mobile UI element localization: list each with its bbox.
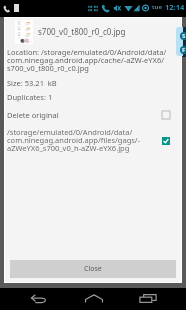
button[interactable]: Recents <box>132 288 164 310</box>
button[interactable]: Skype <box>180 32 186 40</box>
button[interactable]: Back <box>22 288 54 310</box>
button[interactable]: /storage/emulated/0/Android/data/ com.ni… <box>5 127 181 154</box>
button[interactable]: Facebook <box>180 46 186 54</box>
staticText: tue <box>152 3 163 11</box>
button[interactable]: Close <box>10 260 176 278</box>
button[interactable]: Delete original <box>5 110 181 120</box>
staticText: Close <box>84 264 102 274</box>
staticText: /storage/emulated/0/Android/data/ com.ni… <box>7 127 141 154</box>
button[interactable]: Floating shortcuts <box>176 27 183 56</box>
staticText: s700_v0_t800_r0_c0.jpg <box>38 26 126 37</box>
staticText: Delete original <box>7 110 59 120</box>
staticText: Location: /storage/emulated/0/Android/da… <box>7 47 167 74</box>
staticText: F <box>182 46 186 54</box>
button[interactable]: Home <box>78 288 110 310</box>
staticText: 12:14 <box>165 2 185 12</box>
staticText: S <box>182 32 186 40</box>
staticText: Duplicates: 1 <box>7 92 53 102</box>
staticText: Size: 53.21 kB <box>7 78 57 88</box>
